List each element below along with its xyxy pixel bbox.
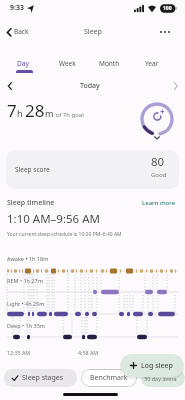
button[interactable]: Back bbox=[4, 26, 38, 39]
staticText: Year bbox=[145, 59, 159, 68]
staticText: Day bbox=[17, 59, 29, 68]
staticText: Deep • 1h 35m bbox=[7, 322, 45, 329]
button[interactable]: Log sleep bbox=[121, 354, 183, 377]
staticText: 80 bbox=[151, 154, 165, 170]
button[interactable] bbox=[92, 55, 126, 74]
staticText: h bbox=[17, 107, 25, 119]
staticText: Benchmark bbox=[90, 373, 128, 383]
button[interactable] bbox=[6, 80, 14, 92]
button[interactable] bbox=[172, 80, 180, 92]
staticText: Week bbox=[59, 59, 76, 68]
button[interactable] bbox=[138, 55, 172, 74]
button[interactable] bbox=[52, 55, 86, 74]
button[interactable]: 30 day avera bbox=[141, 369, 185, 387]
staticText: Sleep score bbox=[15, 165, 50, 174]
staticText: Log sleep bbox=[141, 361, 173, 371]
staticText: 12:35 AM bbox=[7, 349, 31, 356]
button[interactable] bbox=[10, 55, 44, 74]
staticText: 28 bbox=[25, 99, 45, 122]
staticText: 9:33 bbox=[10, 3, 24, 13]
staticText: Your current sleep schedule is 10:00 PM–… bbox=[7, 231, 122, 238]
staticText: Back bbox=[14, 27, 29, 36]
staticText: 30 day avera bbox=[144, 375, 177, 382]
staticText: Month bbox=[99, 59, 120, 68]
staticText: Sleep stages bbox=[22, 373, 64, 383]
staticText: Good bbox=[151, 171, 167, 179]
staticText: 4:58 AM bbox=[78, 349, 99, 356]
staticText: 1:10 AM–9:56 AM bbox=[7, 211, 100, 227]
button[interactable]: Sleep stages bbox=[4, 369, 77, 387]
button[interactable] bbox=[156, 25, 174, 39]
button[interactable]: Benchmark bbox=[81, 369, 137, 387]
staticText: Today bbox=[80, 81, 100, 91]
staticText: m bbox=[45, 107, 54, 119]
staticText: Awake • 1h 18m bbox=[7, 255, 49, 262]
staticText: Sleep timeline bbox=[7, 198, 55, 208]
button[interactable]: Sleep score bbox=[6, 150, 179, 189]
staticText: Light • 4h 25m bbox=[7, 300, 45, 307]
button[interactable]: Learn more bbox=[142, 199, 176, 207]
staticText: Sleep bbox=[84, 27, 102, 37]
staticText: 100 bbox=[163, 5, 172, 12]
staticText: REM • 1h 27m bbox=[7, 277, 43, 284]
staticText: 7 bbox=[7, 99, 17, 122]
button[interactable] bbox=[139, 101, 175, 141]
staticText: of 7h goal bbox=[54, 111, 84, 119]
